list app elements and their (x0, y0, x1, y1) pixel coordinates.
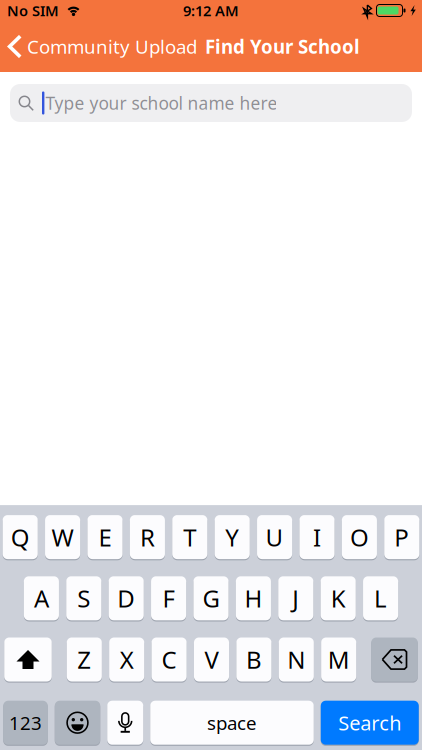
button[interactable]: Type your school name here (10, 84, 412, 122)
button[interactable]: P (384, 515, 419, 560)
button[interactable]: R (130, 515, 165, 560)
button[interactable]: K (321, 576, 356, 621)
staticText: N (287, 644, 305, 675)
staticText: Community Upload (27, 34, 197, 59)
staticText: K (331, 582, 346, 614)
button[interactable]: I (299, 515, 334, 560)
button[interactable]: Emoji (55, 701, 100, 746)
staticText: 9:12 AM (183, 1, 239, 20)
button[interactable]: H (236, 576, 271, 621)
staticText: M (328, 644, 350, 675)
button[interactable]: E (87, 515, 122, 560)
staticText: T (183, 521, 196, 553)
button[interactable]: space (150, 701, 314, 746)
button[interactable]: B (236, 637, 271, 683)
staticText: U (266, 521, 284, 553)
staticText: L (374, 582, 387, 614)
staticText: V (204, 644, 218, 675)
button[interactable]: X (109, 637, 144, 683)
button[interactable]: A (24, 576, 59, 621)
staticText: P (394, 521, 409, 553)
button[interactable]: G (193, 576, 228, 621)
button[interactable]: Y (215, 515, 250, 560)
staticText: Search (338, 709, 401, 736)
staticText: space (207, 710, 257, 735)
button[interactable]: O (342, 515, 377, 560)
staticText: S (77, 582, 90, 614)
staticText: B (246, 644, 262, 675)
staticText: A (34, 582, 49, 614)
staticText: No SIM (7, 1, 59, 20)
button[interactable]: T (172, 515, 207, 560)
staticText: Q (11, 521, 30, 553)
button[interactable]: C (152, 637, 187, 683)
staticText: D (117, 582, 135, 614)
button[interactable]: Community Upload (0, 29, 197, 64)
button[interactable]: 123 (3, 701, 48, 746)
button[interactable]: J (278, 576, 313, 621)
staticText: Y (225, 521, 239, 553)
button[interactable]: Dictation (107, 701, 143, 746)
button[interactable]: Z (67, 637, 102, 683)
staticText: R (140, 521, 155, 553)
staticText: I (313, 521, 321, 553)
staticText: Type your school name here (45, 91, 277, 114)
button[interactable]: L (363, 576, 398, 621)
button[interactable]: F (151, 576, 186, 621)
staticText: 123 (9, 710, 42, 735)
button[interactable]: D (109, 576, 144, 621)
button[interactable]: U (257, 515, 292, 560)
staticText: J (292, 582, 299, 614)
button[interactable]: Shift (4, 637, 52, 683)
staticText: Find Your School (205, 34, 360, 59)
button[interactable]: M (321, 637, 356, 683)
staticText: Z (77, 644, 91, 675)
staticText: O (350, 521, 369, 553)
staticText: E (98, 521, 111, 553)
staticText: C (162, 644, 177, 675)
button[interactable]: Q (3, 515, 38, 560)
button[interactable]: Search (321, 701, 419, 746)
staticText: F (163, 582, 175, 614)
button[interactable]: V (194, 637, 229, 683)
staticText: G (202, 582, 219, 614)
button[interactable]: S (66, 576, 101, 621)
button[interactable]: W (45, 515, 80, 560)
staticText: W (52, 521, 74, 553)
staticText: X (120, 644, 134, 675)
button[interactable]: Delete (371, 637, 418, 683)
button[interactable]: N (279, 637, 314, 683)
staticText: H (244, 582, 262, 614)
